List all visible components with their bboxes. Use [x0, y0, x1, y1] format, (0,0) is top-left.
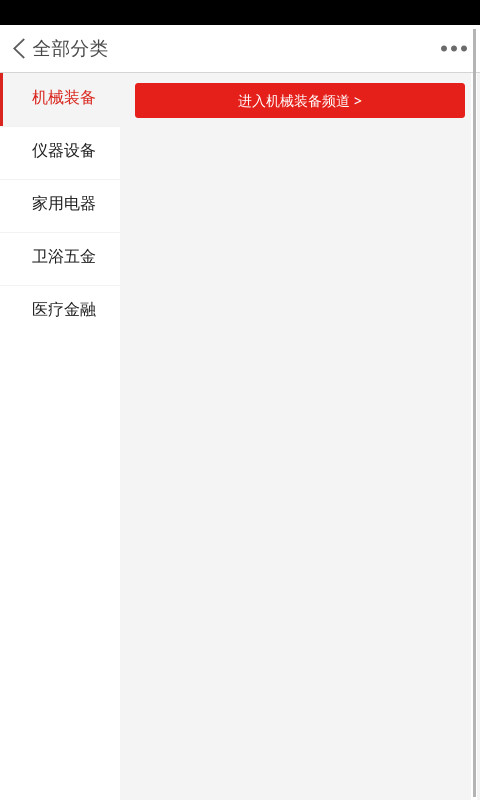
button[interactable]: 机械装备 — [0, 73, 120, 126]
button[interactable]: 家用电器 — [0, 179, 120, 232]
staticText: 全部分类 — [32, 37, 108, 60]
button[interactable]: 卫浴五金 — [0, 232, 120, 285]
button[interactable]: 进入机械装备频道 > — [135, 83, 465, 118]
staticText: 仪器设备 — [32, 141, 96, 160]
staticText: 进入机械装备频道 > — [238, 91, 362, 110]
button[interactable]: More options — [425, 25, 480, 72]
button[interactable]: 医疗金融 — [0, 285, 120, 338]
staticText: 家用电器 — [32, 194, 96, 213]
button[interactable]: 仪器设备 — [0, 126, 120, 179]
button[interactable]: 全部分类 — [0, 25, 120, 72]
staticText: 医疗金融 — [32, 300, 96, 319]
staticText: 卫浴五金 — [32, 247, 96, 266]
staticText: 机械装备 — [32, 88, 96, 107]
